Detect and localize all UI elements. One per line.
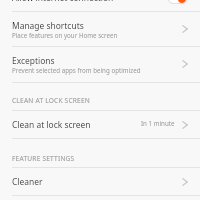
staticText: Allow internet connection [12,0,114,3]
button[interactable]: Exceptions [0,47,200,82]
staticText: Clean at lock screen [12,119,91,131]
staticText: CLEAN AT LOCK SCREEN [12,96,91,105]
button[interactable]: Allow internet connection [0,0,200,11]
staticText: Cleaner [12,176,43,188]
other: Allow internet connection [169,0,187,3]
button[interactable]: Clean at lock screen [0,111,200,138]
staticText: Manage shortcuts [12,20,84,32]
staticText: Prevent selected apps from being optimiz… [12,66,141,74]
button[interactable]: Cleaner [0,168,200,195]
staticText: In 1 minute [141,119,175,127]
staticText: Exceptions [12,55,55,67]
button[interactable]: Manage shortcuts [0,12,200,46]
staticText: FEATURE SETTINGS [12,154,75,163]
staticText: Place features on your Home screen [12,31,118,39]
